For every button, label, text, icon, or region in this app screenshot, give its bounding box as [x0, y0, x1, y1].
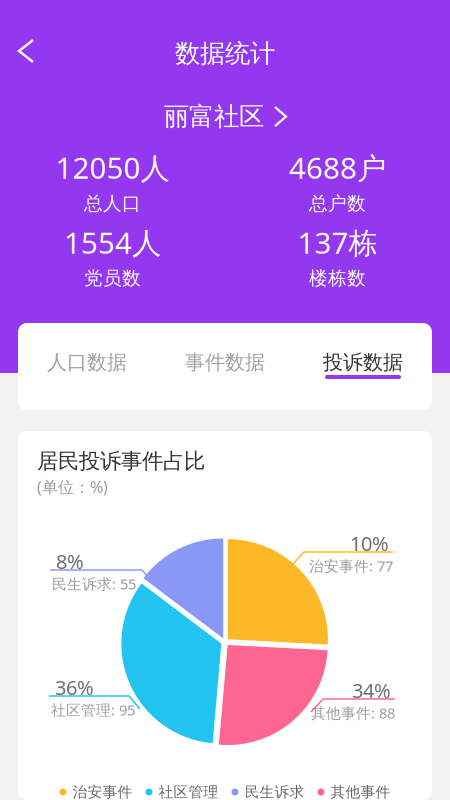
- staticText: 人口数据: [47, 350, 127, 375]
- staticText: 投诉数据: [323, 350, 403, 375]
- staticText: 总人口: [84, 192, 141, 215]
- staticText: 10%: [350, 530, 389, 557]
- staticText: 1554人: [64, 223, 161, 262]
- staticText: 民生诉求: 55: [52, 574, 136, 593]
- staticText: 4688户: [289, 148, 386, 187]
- staticText: 其他事件: [330, 783, 390, 800]
- staticText: (单位：%): [37, 476, 108, 497]
- staticText: 居民投诉事件占比: [37, 448, 205, 474]
- staticText: 34%: [352, 677, 391, 704]
- button[interactable]: 人口数据: [18, 323, 156, 410]
- button[interactable]: 丽富社区: [159, 96, 291, 137]
- staticText: 数据统计: [175, 38, 275, 69]
- staticText: 事件数据: [185, 350, 265, 375]
- staticText: 党员数: [84, 267, 141, 290]
- staticText: 8%: [56, 548, 84, 575]
- staticText: 治安事件: [72, 783, 132, 800]
- staticText: 治安事件: 77: [309, 556, 393, 575]
- staticText: 36%: [55, 674, 94, 701]
- button[interactable]: 民生诉求: [231, 783, 304, 800]
- staticText: 社区管理: [158, 783, 218, 800]
- staticText: 丽富社区: [164, 101, 264, 132]
- staticText: 137栋: [297, 223, 377, 262]
- button[interactable]: Back: [7, 28, 45, 74]
- staticText: 12050人: [55, 148, 169, 187]
- staticText: 总户数: [309, 192, 366, 215]
- button[interactable]: 投诉数据: [294, 323, 432, 410]
- staticText: 其他事件: 88: [311, 703, 395, 722]
- staticText: 民生诉求: [244, 783, 304, 800]
- staticText: 社区管理: 95: [51, 700, 135, 719]
- button[interactable]: 社区管理: [145, 783, 218, 800]
- staticText: 楼栋数: [309, 267, 366, 290]
- button[interactable]: 其他事件: [317, 783, 390, 800]
- button[interactable]: 治安事件: [59, 783, 132, 800]
- button[interactable]: 事件数据: [156, 323, 294, 410]
